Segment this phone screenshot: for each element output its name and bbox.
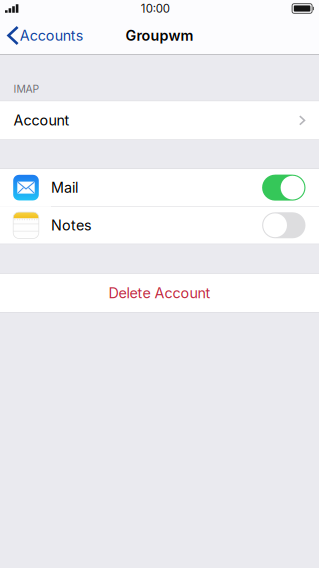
staticText: IMAP: [13, 83, 39, 95]
staticText: 10:00: [141, 2, 170, 15]
button[interactable]: Delete Account: [0, 274, 319, 312]
button[interactable]: Mail: [0, 169, 319, 206]
staticText: Accounts: [20, 27, 84, 44]
button[interactable]: Account: [0, 101, 319, 139]
button[interactable]: Notes: [0, 207, 319, 244]
staticText: Notes: [51, 217, 92, 234]
staticText: Delete Account: [108, 284, 210, 302]
staticText: Mail: [51, 179, 78, 196]
staticText: Account: [13, 112, 69, 129]
staticText: Groupwm: [125, 27, 193, 44]
button[interactable]: Accounts: [0, 17, 92, 54]
